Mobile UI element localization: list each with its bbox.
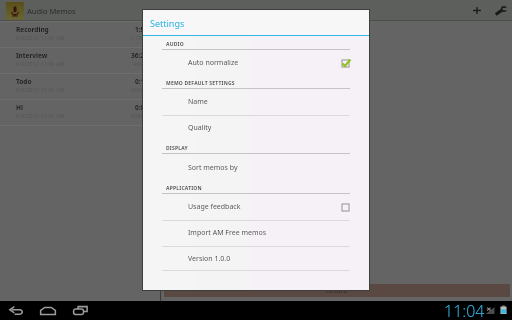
button[interactable]: Name (143, 89, 369, 115)
staticText: Import AM Free memos (188, 228, 267, 238)
button[interactable]: Import AM Free memos (143, 220, 369, 246)
button[interactable]: Record (164, 284, 510, 297)
button[interactable]: Interview (0, 47, 160, 73)
staticText: MEMO DEFAULT SETTINGS (166, 80, 235, 87)
staticText: Todo (16, 77, 32, 86)
button[interactable]: Back (4, 302, 28, 319)
staticText: DISPLAY (166, 145, 188, 152)
staticText: Quality (188, 123, 212, 133)
staticText: 6/9/2012 11:00 AM (16, 60, 65, 67)
staticText: Sort memos by (188, 163, 238, 173)
staticText: Audio Memos (27, 6, 76, 16)
staticText: Settings (150, 17, 185, 29)
button[interactable]: Quality (143, 115, 369, 141)
button[interactable]: Recent apps (68, 302, 93, 319)
button[interactable]: Hi (0, 99, 160, 125)
staticText: 36:23 (131, 51, 148, 60)
staticText: 11:04 (444, 300, 485, 319)
button[interactable]: Usage feedback (143, 194, 369, 220)
button[interactable]: Sort memos by (143, 155, 369, 181)
staticText: 0:09 (135, 103, 148, 112)
button[interactable]: Recording (0, 21, 160, 47)
staticText: Version 1.0.0 (188, 254, 231, 264)
staticText: Hi (16, 103, 23, 112)
staticText: 46MB (133, 60, 148, 67)
staticText: 808KB (131, 112, 148, 119)
button[interactable]: Settings (490, 0, 511, 21)
staticText: Interview (16, 51, 48, 60)
staticText: APPLICATION (166, 185, 202, 192)
button[interactable]: Todo (0, 73, 160, 99)
staticText: 1:51 (135, 25, 148, 34)
staticText: Usage feedback (188, 202, 241, 212)
staticText: Recording (16, 25, 49, 34)
button[interactable]: Version 1.0.0 (143, 246, 369, 272)
button[interactable]: New memo (466, 0, 487, 21)
staticText: 6/9/2012 11:00 AM (16, 112, 65, 119)
staticText: 1.7MB (131, 34, 148, 41)
button[interactable]: Audio Memos app icon (6, 2, 24, 20)
staticText: 6/9/2012 11:00 AM (16, 86, 65, 93)
staticText: 260KB (131, 86, 148, 93)
staticText: 0:12 (135, 77, 148, 86)
staticText: Name (188, 97, 208, 107)
staticText: AUDIO (166, 41, 184, 48)
button[interactable]: Home (35, 302, 61, 319)
staticText: Record (326, 286, 348, 295)
staticText: 9/9/2012 11:00 AM (16, 34, 65, 41)
staticText: Auto normalize (188, 58, 239, 68)
button[interactable]: Auto normalize (143, 50, 369, 76)
